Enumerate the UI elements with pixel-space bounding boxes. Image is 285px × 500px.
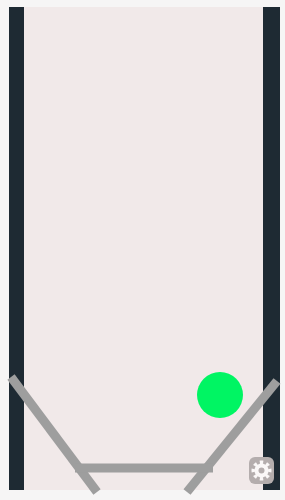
button[interactable]: Settings — [249, 457, 274, 484]
